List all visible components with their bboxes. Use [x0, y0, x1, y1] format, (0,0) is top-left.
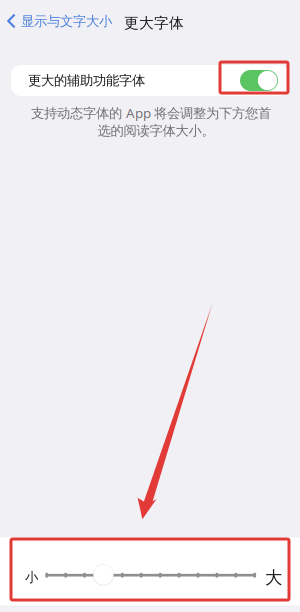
button[interactable]: 显示与文字大小	[7, 13, 112, 29]
staticText: 选的阅读字体大小。	[97, 123, 214, 139]
staticText: 更大字体	[124, 14, 184, 32]
button[interactable]: 更大的辅助功能字体	[240, 70, 278, 91]
staticText: 支持动态字体的 App 将会调整为下方您首	[31, 104, 271, 122]
staticText: 更大的辅助功能字体	[28, 72, 145, 89]
staticText: 大	[265, 567, 282, 588]
staticText: 小	[25, 569, 38, 585]
staticText: 显示与文字大小	[21, 13, 112, 29]
